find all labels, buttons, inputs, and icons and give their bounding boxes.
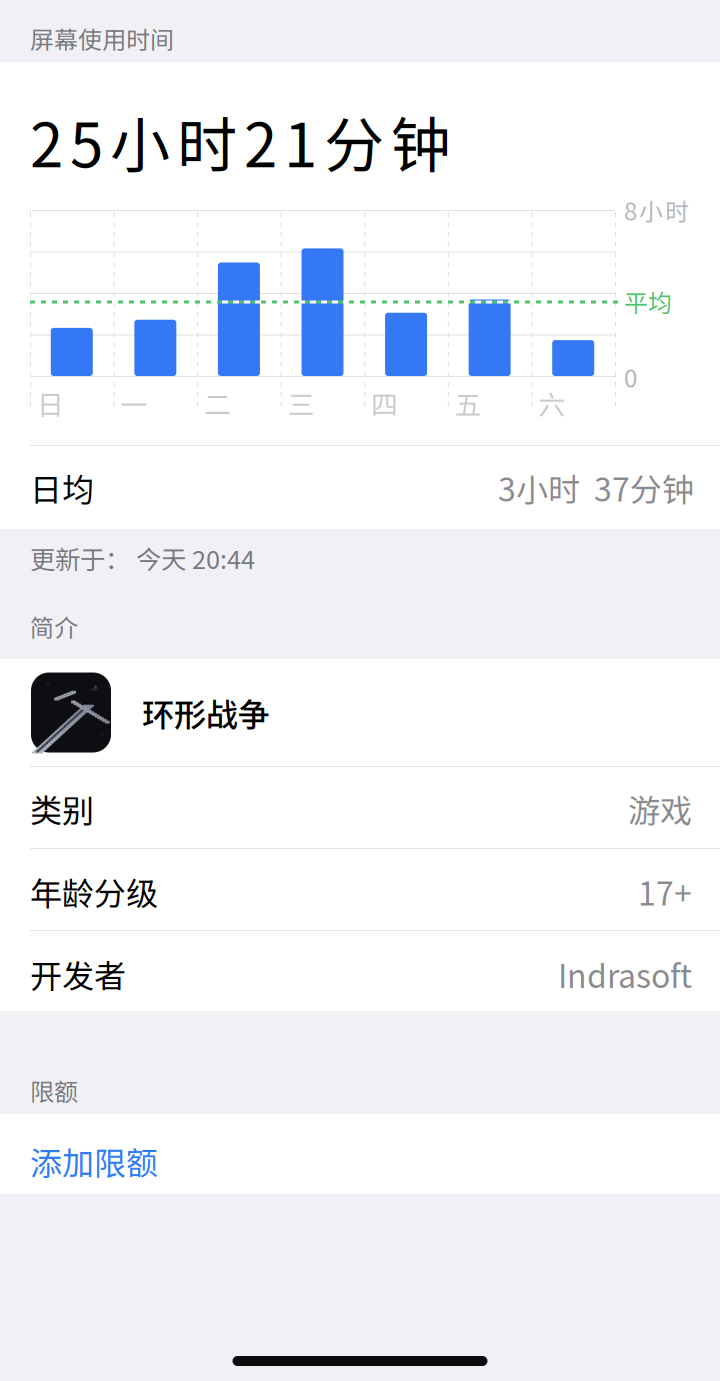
staticText: 开发者 <box>30 951 126 997</box>
staticText: 屏幕使用时间 <box>30 21 174 56</box>
staticText: 0 <box>624 360 637 394</box>
staticText: 年龄分级 <box>30 868 158 915</box>
staticText: Indrasoft <box>558 951 692 997</box>
staticText: 平均 <box>624 284 672 319</box>
staticText: 环形战争 <box>142 689 270 736</box>
staticText: 类别 <box>30 785 94 832</box>
staticText: 四 <box>371 384 398 422</box>
button[interactable]: 类别 <box>0 767 720 849</box>
staticText: 二 <box>204 384 231 422</box>
button[interactable]: 年龄分级 <box>0 849 720 931</box>
staticText: 日均 <box>30 464 94 511</box>
button[interactable]: 环形战争 <box>0 659 720 767</box>
staticText: 添加限额 <box>30 1138 158 1184</box>
staticText: 一 <box>121 384 148 422</box>
staticText: 简介 <box>30 609 78 644</box>
staticText: 17+ <box>638 868 692 915</box>
staticText: 游戏 <box>628 785 692 832</box>
staticText: 六 <box>538 384 565 422</box>
staticText: 3小时 37分钟 <box>498 464 694 511</box>
button[interactable]: 添加限额 <box>0 1114 720 1194</box>
button[interactable]: 开发者 <box>0 931 720 1011</box>
staticText: 三 <box>288 384 315 422</box>
staticText: 25小时21分钟 <box>30 98 451 184</box>
staticText: 五 <box>455 384 482 422</box>
staticText: 更新于： 今天 20:44 <box>30 540 255 576</box>
staticText: 限额 <box>30 1073 78 1108</box>
staticText: 日 <box>37 384 64 422</box>
staticText: 8小时 <box>624 193 689 227</box>
